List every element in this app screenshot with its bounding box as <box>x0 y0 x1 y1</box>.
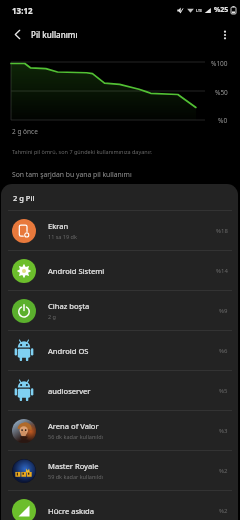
staticText: 59 dk kadar kullanıldı <box>48 473 103 480</box>
staticText: %25 <box>214 5 229 15</box>
staticText: Cihaz boşta <box>48 301 90 311</box>
staticText: %0 <box>218 116 228 125</box>
staticText: Pil kullanımı <box>31 29 78 40</box>
staticText: audioserver <box>48 386 91 396</box>
staticText: LTE <box>196 8 203 13</box>
staticText: %3 <box>219 427 228 435</box>
button[interactable]: Android Sistemi <box>1 251 238 290</box>
staticText: Arena of Valor <box>48 421 99 431</box>
button[interactable]: Ekran <box>1 211 238 250</box>
staticText: %2 <box>219 507 228 515</box>
staticText: %100 <box>211 59 228 68</box>
staticText: 2 g Pil <box>13 193 35 203</box>
staticText: 11 sa 19 dk <box>48 233 77 240</box>
staticText: %2 <box>219 467 228 475</box>
staticText: 13:12 <box>12 5 33 16</box>
button[interactable]: Android OS <box>1 331 238 370</box>
staticText: Android OS <box>48 346 89 356</box>
button[interactable]: audioserver <box>1 371 238 410</box>
staticText: Tahmini pil ömrü, son 7 gündeki kullanım… <box>12 148 153 155</box>
button[interactable]: Pil kullanımı <box>29 23 78 46</box>
staticText: %14 <box>216 267 228 275</box>
staticText: Ekran <box>48 221 69 231</box>
staticText: Master Royale <box>48 461 99 471</box>
staticText: Son tam şarjdan bu yana pil kullanımı <box>12 170 132 179</box>
button[interactable]: Diğer seçenekler <box>213 23 236 46</box>
button[interactable]: Cihaz boşta <box>1 291 238 330</box>
staticText: Hücre askıda <box>48 506 95 516</box>
staticText: %18 <box>216 227 228 235</box>
staticText: 56 dk kadar kullanıldı <box>48 433 103 440</box>
button[interactable]: Hücre askıda <box>1 491 238 520</box>
staticText: 2 g <box>48 313 56 320</box>
button[interactable]: Geri <box>6 23 29 46</box>
staticText: %9 <box>219 307 228 315</box>
staticText: %5 <box>219 387 228 395</box>
staticText: %50 <box>215 88 228 97</box>
button[interactable]: Arena of Valor <box>1 411 238 450</box>
button[interactable]: Master Royale <box>1 451 238 490</box>
staticText: %6 <box>219 347 228 355</box>
staticText: 2 g önce <box>12 127 38 136</box>
staticText: Android Sistemi <box>48 266 105 276</box>
